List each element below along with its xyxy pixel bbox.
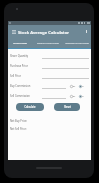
staticText: Purchase Price — [10, 64, 42, 68]
staticText: % — [82, 95, 84, 98]
button[interactable]: Open navigation drawer — [10, 28, 18, 36]
staticText: AVERAGE CALCULATOR — [65, 42, 89, 45]
staticText: Stock Average Calculator — [18, 29, 70, 35]
button[interactable]: Commission type option — [78, 94, 82, 98]
staticText: Sell Commission — [10, 94, 42, 98]
staticText: Net Sell Price: — [10, 127, 27, 131]
staticText: Net Buy Price: — [10, 119, 28, 123]
staticText: Sell Price — [10, 74, 42, 78]
button[interactable]: Calculate — [16, 103, 44, 111]
staticText: CALCULATOR — [13, 42, 27, 45]
staticText: % — [82, 85, 84, 88]
staticText: Rs — [73, 95, 76, 98]
button[interactable]: CALCULATOR — [8, 38, 32, 48]
staticText: Share Quantity — [10, 54, 42, 58]
staticText: Rs — [73, 85, 76, 88]
staticText: Buy Commission — [10, 84, 42, 88]
button[interactable]: Commission type option — [69, 94, 73, 98]
button[interactable]: More options — [83, 28, 90, 35]
button[interactable]: AVERAGE CALCULATOR — [63, 38, 91, 48]
staticText: PROFIT CALCULATOR — [37, 42, 59, 45]
button[interactable]: Commission type option — [78, 84, 82, 88]
button[interactable]: PROFIT CALCULATOR — [32, 38, 63, 48]
button[interactable]: Reset — [54, 103, 80, 111]
staticText: Reset — [64, 105, 71, 109]
staticText: Calculate — [24, 105, 36, 109]
button[interactable]: Commission type option — [69, 84, 73, 88]
